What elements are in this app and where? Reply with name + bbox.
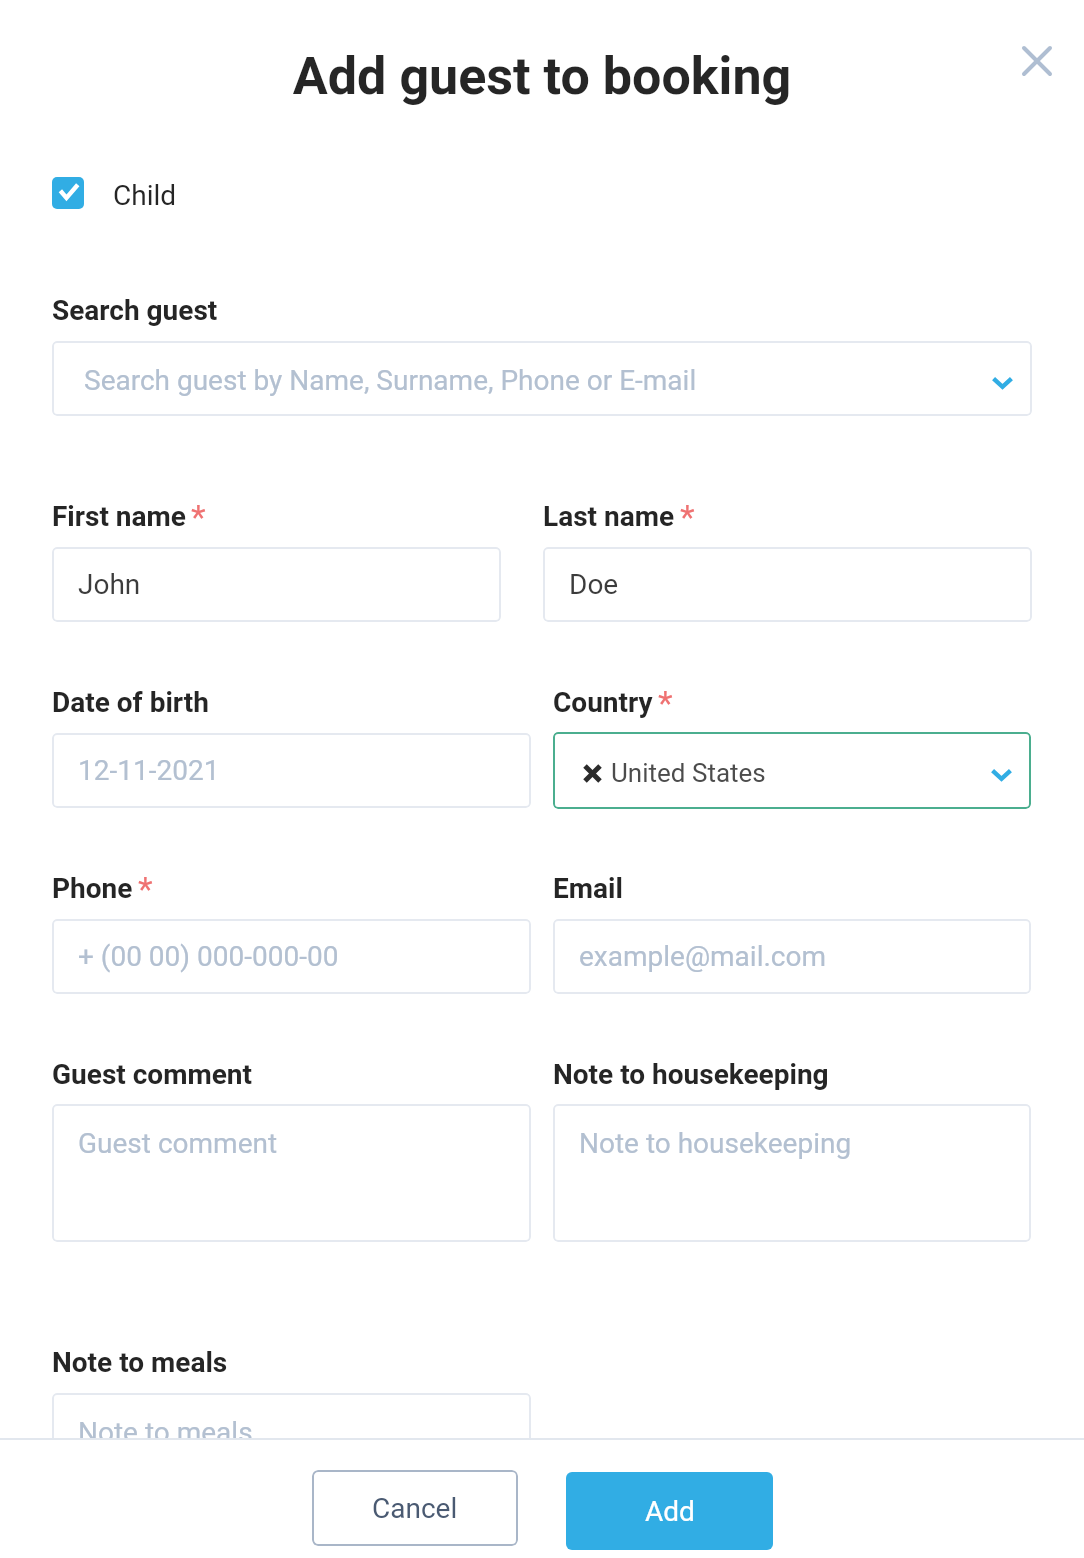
staticText: * xyxy=(680,497,695,537)
button[interactable]: John xyxy=(52,547,501,622)
staticText: Add xyxy=(645,1495,695,1528)
staticText: Doe xyxy=(569,568,619,601)
staticText: Child xyxy=(113,179,177,212)
staticText: Note to housekeeping xyxy=(579,1127,852,1160)
staticText: example@mail.com xyxy=(579,940,827,973)
staticText: Note to meals xyxy=(52,1346,228,1379)
button[interactable]: Cancel xyxy=(312,1470,518,1546)
button[interactable]: + (00 00) 000-000-00 xyxy=(52,919,531,994)
staticText: Guest comment xyxy=(52,1058,252,1091)
button[interactable]: 12-11-2021 xyxy=(52,733,531,808)
button[interactable]: Guest comment xyxy=(52,1104,531,1242)
button[interactable]: Child xyxy=(52,176,177,209)
staticText: * xyxy=(658,683,673,723)
staticText: United States xyxy=(611,758,766,788)
staticText: Guest comment xyxy=(78,1127,278,1160)
staticText: 12-11-2021 xyxy=(78,754,220,787)
staticText: Cancel xyxy=(372,1492,458,1525)
staticText: + (00 00) 000-000-00 xyxy=(78,940,339,973)
staticText: Email xyxy=(553,872,623,905)
button[interactable]: Doe xyxy=(543,547,1032,622)
staticText: Last name xyxy=(543,500,675,533)
staticText: Country xyxy=(553,686,653,719)
button[interactable]: Search guest by Name, Surname, Phone or … xyxy=(52,341,1032,416)
staticText: First name xyxy=(52,500,186,533)
button[interactable]: Note to housekeeping xyxy=(553,1104,1031,1242)
staticText: Search guest by Name, Surname, Phone or … xyxy=(84,364,697,397)
button[interactable]: Add xyxy=(566,1472,773,1550)
staticText: Note to meals xyxy=(78,1416,253,1449)
staticText: Add guest to booking xyxy=(0,46,1084,107)
button[interactable]: United States xyxy=(553,732,1031,809)
staticText: * xyxy=(138,869,153,909)
staticText: Search guest xyxy=(52,294,218,327)
button[interactable]: Note to meals xyxy=(52,1393,531,1531)
button[interactable]: Close xyxy=(1011,35,1063,87)
staticText: Phone xyxy=(52,872,133,905)
staticText: Note to housekeeping xyxy=(553,1058,829,1091)
staticText: * xyxy=(191,497,206,537)
staticText: Date of birth xyxy=(52,686,209,719)
button[interactable]: example@mail.com xyxy=(553,919,1031,994)
staticText: John xyxy=(78,568,141,601)
